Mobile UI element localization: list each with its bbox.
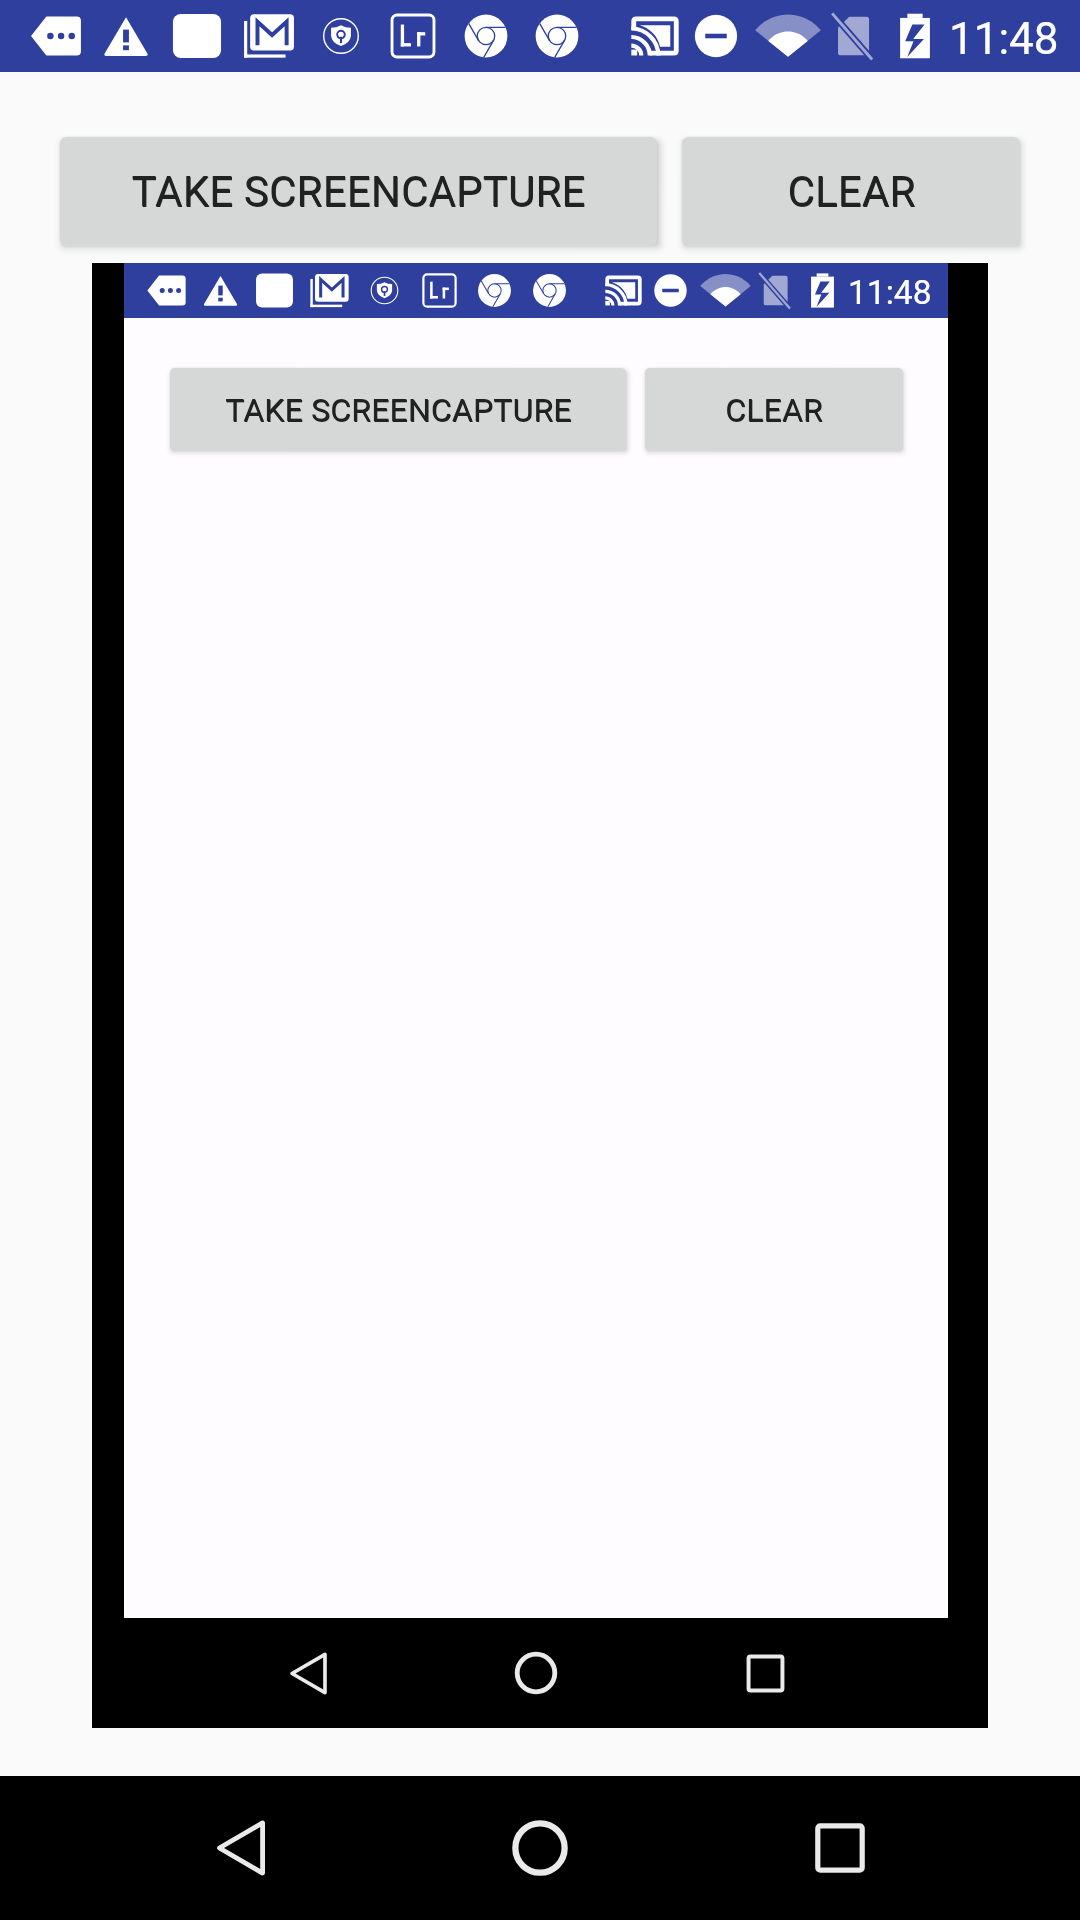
staticText: 11:48 [949, 13, 1059, 65]
button[interactable]: Home [481, 1618, 591, 1728]
staticText: TAKE SCREENCAPTURE [131, 167, 586, 216]
button[interactable]: TAKE SCREENCAPTURE [170, 368, 626, 451]
button[interactable]: Home [468, 1776, 612, 1920]
button[interactable]: CLEAR [645, 368, 903, 451]
button[interactable]: Back [169, 1776, 313, 1920]
button[interactable]: Recent apps [710, 1618, 820, 1728]
staticText: CLEAR [787, 167, 916, 216]
staticText: 11:48 [848, 273, 932, 312]
staticText: CLEAR [725, 391, 823, 429]
staticText: TAKE SCREENCAPTURE [225, 391, 572, 429]
button[interactable]: Back [253, 1618, 363, 1728]
button[interactable]: Recent apps [768, 1776, 912, 1920]
button[interactable]: CLEAR [682, 137, 1020, 246]
button[interactable]: TAKE SCREENCAPTURE [60, 137, 657, 246]
